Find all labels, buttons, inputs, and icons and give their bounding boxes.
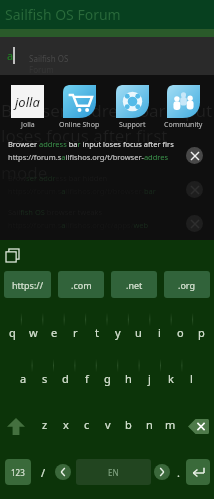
staticText: g bbox=[104, 371, 111, 386]
staticText: r bbox=[73, 325, 78, 340]
staticText: j bbox=[148, 371, 151, 386]
button[interactable]: t bbox=[86, 311, 107, 357]
button[interactable]: u bbox=[128, 311, 149, 357]
button[interactable]: Previous layout bbox=[55, 464, 71, 480]
button[interactable]: z bbox=[34, 403, 55, 449]
staticText: Support bbox=[119, 120, 146, 130]
button[interactable]: Browser address bar input loses focus af… bbox=[0, 133, 214, 167]
button[interactable]: Shift bbox=[0, 403, 31, 449]
staticText: mode bbox=[1, 161, 48, 184]
button[interactable]: g bbox=[97, 357, 118, 403]
staticText: z bbox=[42, 417, 48, 432]
staticText: Sailfish OS browser tweaks bbox=[8, 207, 103, 217]
button[interactable]: x bbox=[55, 403, 76, 449]
button[interactable]: EN bbox=[76, 459, 151, 485]
button[interactable]: Enter bbox=[186, 459, 210, 485]
button[interactable]: Paste from clipboard bbox=[6, 249, 19, 262]
staticText: b bbox=[125, 417, 132, 432]
button[interactable]: p bbox=[191, 311, 212, 357]
staticText: s bbox=[42, 371, 48, 386]
button[interactable]: jolla bbox=[11, 85, 44, 118]
button[interactable]: y bbox=[107, 311, 128, 357]
button[interactable]: h bbox=[118, 357, 139, 403]
staticText: loses focus after first bbox=[1, 124, 168, 147]
staticText: https://forum.sailfishos.org/t/browser-a… bbox=[8, 152, 169, 162]
staticText: a bbox=[7, 48, 14, 63]
staticText: p bbox=[198, 325, 205, 340]
button[interactable]: .net bbox=[111, 271, 157, 298]
button[interactable]: Browser address bar hidden bbox=[0, 167, 214, 201]
staticText: o bbox=[177, 325, 184, 340]
button[interactable]: c bbox=[76, 403, 97, 449]
staticText: k bbox=[168, 371, 174, 386]
button[interactable]: Backspace bbox=[188, 419, 209, 434]
staticText: .org bbox=[178, 279, 196, 291]
button[interactable]: Remove suggestion bbox=[186, 181, 203, 198]
button[interactable]: . bbox=[170, 449, 186, 495]
staticText: . bbox=[177, 465, 180, 480]
button[interactable] bbox=[167, 85, 200, 118]
staticText: t bbox=[95, 325, 99, 340]
staticText: w bbox=[29, 325, 38, 340]
button[interactable]: / bbox=[31, 449, 55, 495]
button[interactable]: b bbox=[118, 403, 139, 449]
staticText: m bbox=[165, 417, 176, 432]
button[interactable]: n bbox=[139, 403, 160, 449]
button[interactable]: .org bbox=[164, 271, 210, 298]
button[interactable]: e bbox=[44, 311, 65, 357]
staticText: .com bbox=[71, 279, 92, 291]
staticText: y bbox=[115, 325, 121, 340]
button[interactable] bbox=[116, 85, 149, 118]
staticText: / bbox=[41, 465, 46, 480]
button[interactable]: Next layout bbox=[154, 464, 170, 480]
button[interactable]: l bbox=[181, 357, 202, 403]
button[interactable]: m bbox=[160, 403, 181, 449]
staticText: Sailfish OS Forum bbox=[5, 5, 121, 24]
staticText: d bbox=[62, 371, 69, 386]
button[interactable]: a bbox=[13, 357, 34, 403]
staticText: 123 bbox=[11, 467, 25, 478]
staticText: https:// bbox=[12, 279, 44, 291]
staticText: EN bbox=[108, 467, 119, 478]
button[interactable]: Sailfish OS browser tweaks bbox=[0, 201, 214, 235]
staticText: f bbox=[85, 371, 89, 386]
button[interactable]: w bbox=[23, 311, 44, 357]
staticText: a bbox=[20, 371, 27, 386]
button[interactable]: .com bbox=[58, 271, 104, 298]
button[interactable]: Remove suggestion bbox=[186, 215, 203, 232]
staticText: v bbox=[105, 417, 111, 432]
staticText: jolla bbox=[15, 93, 40, 111]
staticText: Browser address bar input bbox=[1, 99, 213, 122]
staticText: .net bbox=[126, 279, 143, 291]
button[interactable]: o bbox=[170, 311, 191, 357]
staticText: Community bbox=[164, 120, 203, 130]
button[interactable]: Remove suggestion bbox=[186, 147, 203, 164]
button[interactable]: k bbox=[160, 357, 181, 403]
staticText: Sailfish OS bbox=[29, 53, 69, 64]
button[interactable]: i bbox=[149, 311, 170, 357]
staticText: Browser address bar hidden bbox=[8, 173, 108, 183]
button[interactable]: d bbox=[55, 357, 76, 403]
button[interactable]: j bbox=[139, 357, 160, 403]
staticText: q bbox=[9, 325, 16, 340]
button[interactable]: f bbox=[76, 357, 97, 403]
staticText: u bbox=[135, 325, 142, 340]
staticText: Jolla bbox=[21, 120, 35, 130]
button[interactable]: s bbox=[34, 357, 55, 403]
button[interactable]: 123 bbox=[5, 459, 31, 485]
staticText: Browser address bar input loses focus af… bbox=[8, 139, 174, 149]
staticText: Online Shop bbox=[59, 120, 100, 130]
button[interactable]: r bbox=[65, 311, 86, 357]
button[interactable]: https:// bbox=[4, 271, 51, 298]
button[interactable]: q bbox=[2, 311, 23, 357]
staticText: n bbox=[146, 417, 153, 432]
button[interactable] bbox=[63, 85, 96, 118]
button[interactable]: v bbox=[97, 403, 118, 449]
staticText: x bbox=[63, 417, 69, 432]
staticText: h bbox=[125, 371, 132, 386]
